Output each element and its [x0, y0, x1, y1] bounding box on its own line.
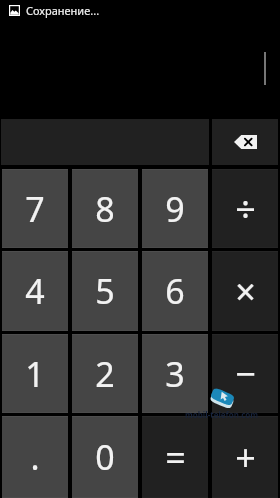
staticText: ×	[235, 267, 256, 316]
button[interactable]: −	[212, 334, 278, 413]
staticText: +	[235, 433, 256, 482]
button[interactable]: 5	[72, 251, 138, 331]
staticText: 2	[95, 351, 115, 397]
staticText: .	[30, 434, 40, 480]
staticText: ÷	[235, 184, 256, 233]
staticText: 7	[25, 186, 45, 232]
button[interactable]: 1	[2, 334, 68, 413]
staticText: 3	[165, 351, 185, 397]
staticText: 4	[25, 268, 45, 314]
staticText: =	[165, 433, 186, 482]
staticText: −	[235, 349, 256, 398]
staticText: mobil-telefon.com	[185, 409, 259, 420]
button[interactable]: ×	[212, 251, 278, 331]
button[interactable]: =	[142, 416, 208, 498]
staticText: 9	[165, 186, 185, 232]
button[interactable]: 7	[2, 169, 68, 248]
button[interactable]: ÷	[212, 169, 278, 248]
button[interactable]: 2	[72, 334, 138, 413]
button[interactable]: 6	[142, 251, 208, 331]
button[interactable]: 8	[72, 169, 138, 248]
staticText: 8	[95, 186, 115, 232]
button[interactable]: Backspace	[212, 119, 278, 165]
button[interactable]: .	[2, 416, 68, 498]
button[interactable]: 3	[142, 334, 208, 413]
staticText: 5	[95, 268, 115, 314]
button[interactable]: 4	[2, 251, 68, 331]
staticText: 1	[25, 351, 45, 397]
staticText: 0	[95, 434, 115, 480]
staticText: 6	[165, 268, 185, 314]
button[interactable]: 9	[142, 169, 208, 248]
staticText: Сохранение...	[26, 3, 100, 18]
button[interactable]: 0	[72, 416, 138, 498]
button[interactable]: +	[212, 416, 278, 498]
